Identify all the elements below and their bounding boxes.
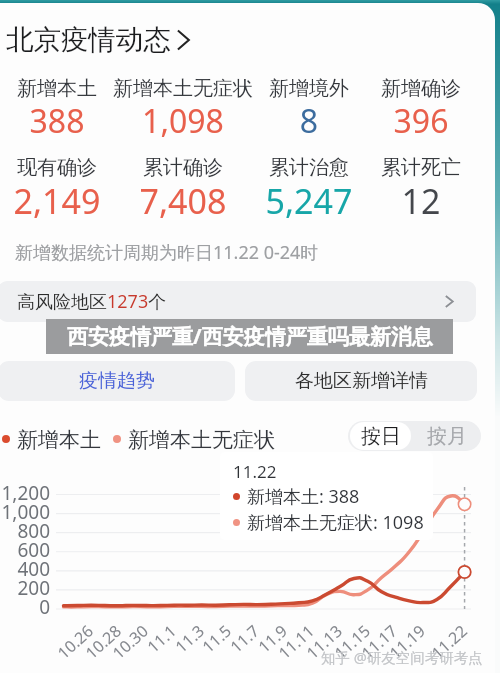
staticText: 新增本土 xyxy=(0,76,137,101)
staticText: 2,149 xyxy=(0,178,137,224)
staticText: 疫情趋势 xyxy=(79,369,155,393)
staticText: 按日 xyxy=(361,424,401,449)
staticText: 0 xyxy=(0,594,50,620)
staticText: 北京疫情动态 xyxy=(6,23,171,57)
staticText: 累计确诊 xyxy=(103,155,263,180)
staticText: 7,408 xyxy=(103,178,263,224)
staticText: 8 xyxy=(229,99,389,143)
staticText: 12 xyxy=(341,178,495,224)
staticText: 11.22 xyxy=(414,620,472,673)
staticText: 11.11 xyxy=(261,620,319,673)
other: More details xyxy=(173,29,195,51)
staticText: 新增境外 xyxy=(229,76,389,101)
staticText: 新增本土: 388 xyxy=(247,484,360,508)
button[interactable]: 北京疫情动态 xyxy=(6,23,203,57)
staticText: 各地区新增详情 xyxy=(295,369,428,393)
staticText: 知乎 @研友空间考研考点 xyxy=(321,647,483,667)
staticText: 新增本土无症状 xyxy=(128,427,275,451)
button[interactable]: 高风险地区1273个 xyxy=(0,281,476,322)
staticText: 388 xyxy=(0,99,137,143)
staticText: 10.28 xyxy=(68,620,126,673)
button[interactable]: 疫情趋势 xyxy=(0,361,235,401)
staticText: 11.15 xyxy=(317,620,375,673)
staticText: 新增确诊 xyxy=(341,76,495,101)
staticText: 1,200 xyxy=(0,480,50,506)
staticText: 11.19 xyxy=(372,620,430,673)
staticText: 11.7 xyxy=(206,620,264,673)
staticText: 新增数据统计周期为昨日11.22 0-24时 xyxy=(15,240,319,265)
button[interactable]: 按日 xyxy=(350,422,411,450)
button[interactable]: 按月 xyxy=(414,422,479,450)
staticText: 11.9 xyxy=(234,620,292,673)
staticText: 600 xyxy=(0,537,50,563)
staticText: 新增本土无症状: 1098 xyxy=(247,510,424,534)
staticText: 1,098 xyxy=(103,99,263,143)
staticText: 10.30 xyxy=(95,620,153,673)
staticText: 高风险地区1273个 xyxy=(17,289,167,314)
staticText: 11.3 xyxy=(151,620,209,673)
staticText: 10.26 xyxy=(40,620,98,673)
staticText: 新增本土 xyxy=(17,427,101,451)
staticText: 5,247 xyxy=(229,178,389,224)
staticText: 现有确诊 xyxy=(0,155,137,180)
staticText: 800 xyxy=(0,518,50,544)
staticText: 累计治愈 xyxy=(229,155,389,180)
staticText: 400 xyxy=(0,556,50,582)
staticText: 11.22 xyxy=(233,460,277,483)
staticText: 200 xyxy=(0,575,50,601)
staticText: 新增本土无症状 xyxy=(103,76,263,101)
staticText: 396 xyxy=(341,99,495,143)
staticText: 1,000 xyxy=(0,499,50,525)
button[interactable]: 各地区新增详情 xyxy=(245,361,477,401)
staticText: 11.17 xyxy=(344,620,402,673)
staticText: 累计死亡 xyxy=(341,155,495,180)
staticText: 11.1 xyxy=(123,620,181,673)
staticText: 11.13 xyxy=(289,620,347,673)
staticText: 11.5 xyxy=(178,620,236,673)
staticText: 按月 xyxy=(427,424,467,449)
staticText: 西安疫情严重/西安疫情严重吗最新消息 xyxy=(67,322,433,351)
